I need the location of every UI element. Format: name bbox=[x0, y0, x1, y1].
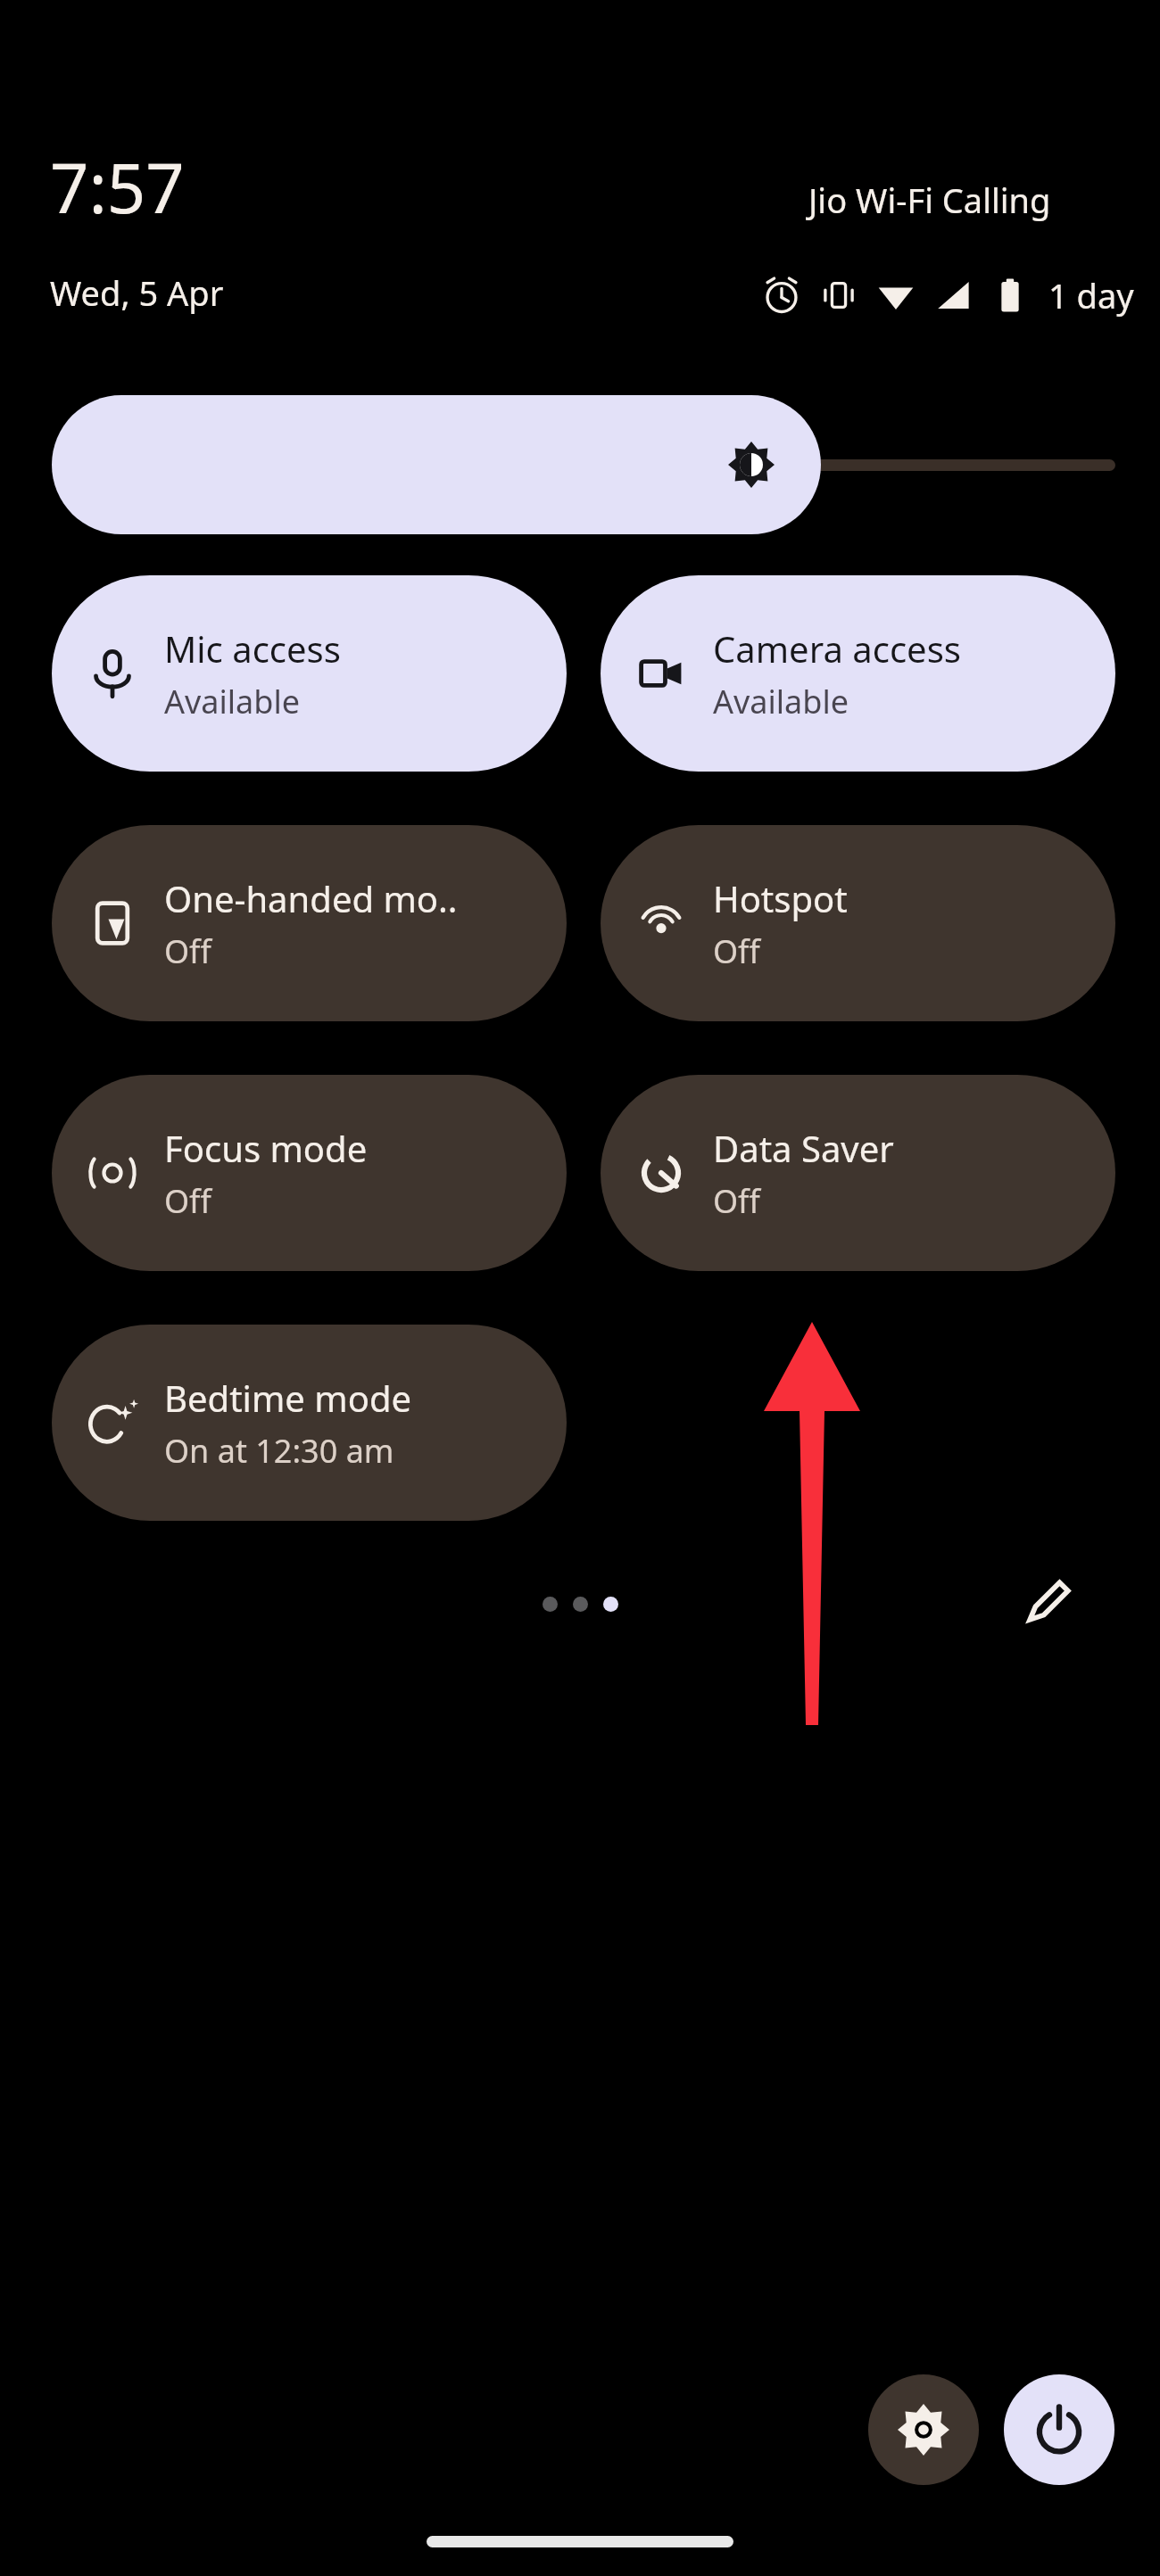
staticText: Camera access bbox=[713, 624, 961, 673]
staticText: Focus mode bbox=[164, 1124, 368, 1172]
staticText: Off bbox=[713, 1179, 760, 1223]
button[interactable]: Focus mode bbox=[52, 1075, 567, 1271]
button[interactable]: Settings bbox=[868, 2374, 979, 2485]
staticText: Mic access bbox=[164, 624, 341, 673]
staticText: Off bbox=[164, 929, 211, 973]
button[interactable]: Bedtime mode bbox=[52, 1325, 567, 1521]
button[interactable] bbox=[52, 395, 1115, 534]
staticText: Available bbox=[164, 680, 300, 723]
staticText: Off bbox=[164, 1179, 211, 1223]
staticText: Hotspot bbox=[713, 874, 848, 922]
staticText: One-handed mo.. bbox=[164, 874, 458, 922]
button[interactable]: One-handed mo.. bbox=[52, 825, 567, 1021]
button[interactable]: Mic access bbox=[52, 575, 567, 772]
staticText: Data Saver bbox=[713, 1124, 894, 1172]
staticText: On at 12:30 am bbox=[164, 1429, 394, 1473]
staticText: Jio Wi-Fi Calling bbox=[808, 177, 1051, 223]
staticText: 1 day bbox=[1048, 272, 1134, 318]
button[interactable]: Edit tiles bbox=[1004, 1556, 1093, 1646]
staticText: Bedtime mode bbox=[164, 1374, 412, 1422]
button[interactable]: Camera access bbox=[601, 575, 1115, 772]
staticText: Available bbox=[713, 680, 849, 723]
staticText: 7:57 bbox=[50, 141, 185, 234]
button[interactable]: Hotspot bbox=[601, 825, 1115, 1021]
button[interactable]: Power bbox=[1004, 2374, 1114, 2485]
button[interactable]: Data Saver bbox=[601, 1075, 1115, 1271]
staticText: Off bbox=[713, 929, 760, 973]
staticText: Wed, 5 Apr bbox=[50, 269, 224, 316]
